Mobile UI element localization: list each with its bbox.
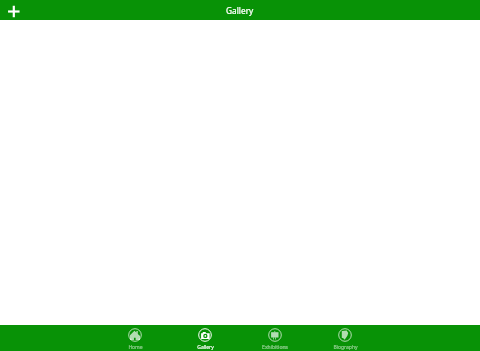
- button[interactable]: Biography: [310, 325, 380, 351]
- button[interactable]: Home: [100, 325, 170, 351]
- button[interactable]: Add: [0, 0, 27, 20]
- staticText: Exhibitions: [262, 344, 288, 351]
- staticText: Biography: [333, 344, 358, 351]
- staticText: Home: [128, 344, 143, 351]
- button[interactable]: Exhibitions: [240, 325, 310, 351]
- staticText: Gallery: [226, 5, 254, 16]
- button[interactable]: Gallery: [170, 325, 240, 351]
- staticText: Gallery: [197, 344, 214, 351]
